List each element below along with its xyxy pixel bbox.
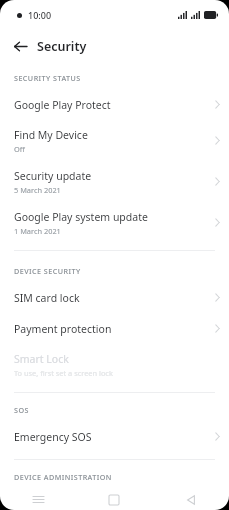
staticText: 5 March 2021 xyxy=(14,185,61,195)
button[interactable]: Security update xyxy=(0,161,229,202)
button[interactable]: Back xyxy=(8,34,32,58)
button[interactable]: SIM card lock xyxy=(0,282,229,313)
button[interactable]: Emergency SOS xyxy=(0,421,229,452)
staticText: SECURITY STATUS xyxy=(14,73,81,83)
button[interactable]: Home xyxy=(98,489,130,510)
staticText: SIM card lock xyxy=(14,291,80,305)
button[interactable]: Recent apps xyxy=(22,489,54,510)
staticText: 1 March 2021 xyxy=(14,226,61,236)
staticText: Google Play system update xyxy=(14,210,148,224)
staticText: DEVICE SECURITY xyxy=(14,266,81,276)
button[interactable]: Google Play Protect xyxy=(0,89,229,120)
staticText: Security update xyxy=(14,169,92,183)
staticText: 10:00 xyxy=(28,9,52,21)
staticText: Emergency SOS xyxy=(14,430,92,444)
button[interactable]: Back xyxy=(175,489,207,510)
staticText: To use, first set a screen lock xyxy=(14,368,113,378)
staticText: Smart Lock xyxy=(14,352,69,366)
staticText: SOS xyxy=(14,405,29,415)
staticText: Find My Device xyxy=(14,128,88,142)
staticText: Off xyxy=(14,144,25,154)
button[interactable]: Smart Lock xyxy=(0,344,229,385)
staticText: Google Play Protect xyxy=(14,98,111,112)
staticText: Security xyxy=(37,38,87,55)
button[interactable]: Google Play system update xyxy=(0,202,229,243)
button[interactable]: Find My Device xyxy=(0,120,229,161)
button[interactable]: Payment protection xyxy=(0,313,229,344)
staticText: DEVICE ADMINISTRATION xyxy=(14,472,112,482)
staticText: Payment protection xyxy=(14,322,112,336)
